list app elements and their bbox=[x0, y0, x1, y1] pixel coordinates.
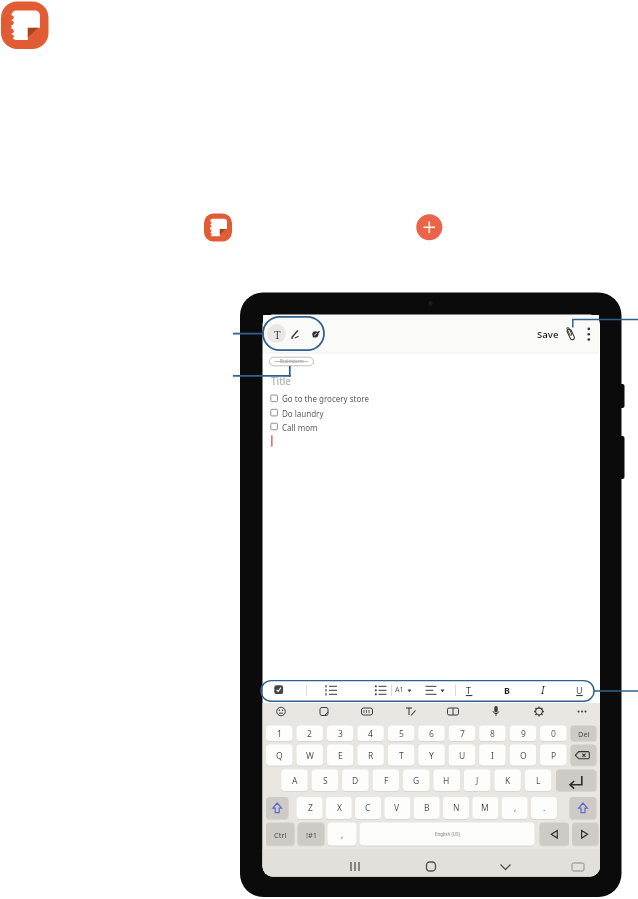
button[interactable] bbox=[416, 214, 443, 241]
staticText: 0 bbox=[551, 728, 556, 740]
button[interactable]: O bbox=[510, 745, 537, 766]
button[interactable]: Do laundry bbox=[282, 405, 442, 421]
button[interactable]: Call mom bbox=[282, 419, 442, 435]
button[interactable]: 9 bbox=[510, 726, 537, 742]
button[interactable]: , bbox=[328, 823, 357, 846]
button[interactable] bbox=[270, 357, 314, 366]
button[interactable] bbox=[423, 858, 439, 874]
button[interactable] bbox=[461, 682, 478, 698]
staticText: N bbox=[453, 802, 460, 814]
button[interactable]: , bbox=[502, 797, 528, 819]
button[interactable]: K bbox=[494, 770, 521, 792]
staticText: U bbox=[459, 750, 466, 762]
staticText: Y bbox=[429, 750, 434, 762]
button[interactable]: 2 bbox=[296, 726, 323, 742]
button[interactable]: W bbox=[296, 745, 323, 766]
button[interactable] bbox=[540, 823, 570, 846]
button[interactable]: X bbox=[326, 797, 352, 819]
button[interactable]: E bbox=[327, 745, 354, 766]
button[interactable] bbox=[316, 704, 332, 720]
button[interactable]: 0 bbox=[540, 726, 567, 742]
button[interactable] bbox=[359, 704, 375, 720]
button[interactable]: F bbox=[373, 770, 400, 792]
button[interactable]: Z bbox=[297, 797, 323, 819]
button[interactable]: 5 bbox=[388, 726, 415, 742]
button[interactable]: H bbox=[433, 770, 460, 792]
button[interactable] bbox=[445, 704, 461, 720]
staticText: 3 bbox=[338, 728, 343, 740]
button[interactable] bbox=[270, 682, 287, 698]
button[interactable] bbox=[347, 858, 363, 874]
button[interactable]: Ctrl bbox=[266, 823, 295, 846]
button[interactable]: 6 bbox=[418, 726, 445, 742]
button[interactable]: B bbox=[414, 797, 440, 819]
button[interactable]: R bbox=[357, 745, 384, 766]
button[interactable] bbox=[306, 324, 325, 344]
button[interactable] bbox=[273, 704, 289, 720]
button[interactable] bbox=[266, 323, 287, 344]
button[interactable] bbox=[360, 823, 535, 846]
button[interactable]: U bbox=[449, 745, 476, 766]
button[interactable] bbox=[574, 704, 590, 720]
button[interactable] bbox=[571, 745, 597, 766]
button[interactable]: Del bbox=[571, 726, 597, 742]
button[interactable] bbox=[287, 324, 305, 344]
button[interactable] bbox=[204, 214, 232, 242]
button[interactable]: C bbox=[355, 797, 381, 819]
button[interactable] bbox=[571, 682, 588, 698]
staticText: Ctrl bbox=[274, 830, 287, 840]
button[interactable] bbox=[556, 770, 597, 792]
button[interactable]: I bbox=[479, 745, 506, 766]
button[interactable] bbox=[534, 682, 551, 698]
button[interactable]: N bbox=[443, 797, 469, 819]
button[interactable]: 4 bbox=[357, 726, 384, 742]
button[interactable]: D bbox=[342, 770, 369, 792]
button[interactable]: T bbox=[388, 745, 415, 766]
button[interactable] bbox=[1, 2, 49, 50]
button[interactable]: L bbox=[525, 770, 552, 792]
button[interactable]: V bbox=[384, 797, 410, 819]
button[interactable]: J bbox=[464, 770, 491, 792]
button[interactable] bbox=[570, 859, 586, 873]
button[interactable] bbox=[488, 704, 504, 720]
button[interactable]: M bbox=[472, 797, 498, 819]
button[interactable]: 1 bbox=[266, 726, 293, 742]
button[interactable] bbox=[323, 682, 340, 698]
staticText: Call mom bbox=[282, 422, 318, 433]
button[interactable]: Save bbox=[518, 326, 578, 342]
button[interactable] bbox=[572, 823, 599, 846]
staticText: Do laundry bbox=[282, 408, 324, 419]
staticText: 6 bbox=[429, 728, 434, 740]
button[interactable]: !#1 bbox=[298, 823, 325, 846]
button[interactable] bbox=[570, 797, 597, 819]
staticText: I bbox=[541, 683, 545, 697]
staticText: T bbox=[399, 750, 404, 762]
button[interactable]: 8 bbox=[479, 726, 506, 742]
button[interactable]: S bbox=[312, 770, 339, 792]
button[interactable] bbox=[391, 682, 413, 698]
button[interactable]: Y bbox=[418, 745, 445, 766]
staticText: , bbox=[514, 802, 517, 814]
staticText: T bbox=[466, 684, 472, 696]
button[interactable]: A bbox=[281, 770, 308, 792]
button[interactable]: G bbox=[403, 770, 430, 792]
staticText: W bbox=[306, 750, 314, 762]
staticText: B bbox=[424, 802, 430, 814]
button[interactable]: 3 bbox=[327, 726, 354, 742]
button[interactable] bbox=[402, 704, 418, 720]
button[interactable]: Go to the grocery store bbox=[282, 390, 442, 406]
button[interactable]: Q bbox=[266, 745, 293, 766]
staticText: A bbox=[292, 775, 298, 787]
button[interactable]: 7 bbox=[449, 726, 476, 742]
button[interactable]: . bbox=[531, 797, 557, 819]
button[interactable] bbox=[531, 704, 547, 720]
button[interactable]: P bbox=[540, 745, 567, 766]
button[interactable] bbox=[424, 682, 446, 698]
button[interactable] bbox=[498, 858, 514, 874]
button[interactable] bbox=[266, 797, 289, 819]
staticText: L bbox=[536, 775, 541, 787]
button[interactable] bbox=[563, 327, 578, 342]
button[interactable] bbox=[372, 682, 389, 698]
button[interactable] bbox=[498, 682, 515, 698]
button[interactable] bbox=[582, 326, 595, 343]
